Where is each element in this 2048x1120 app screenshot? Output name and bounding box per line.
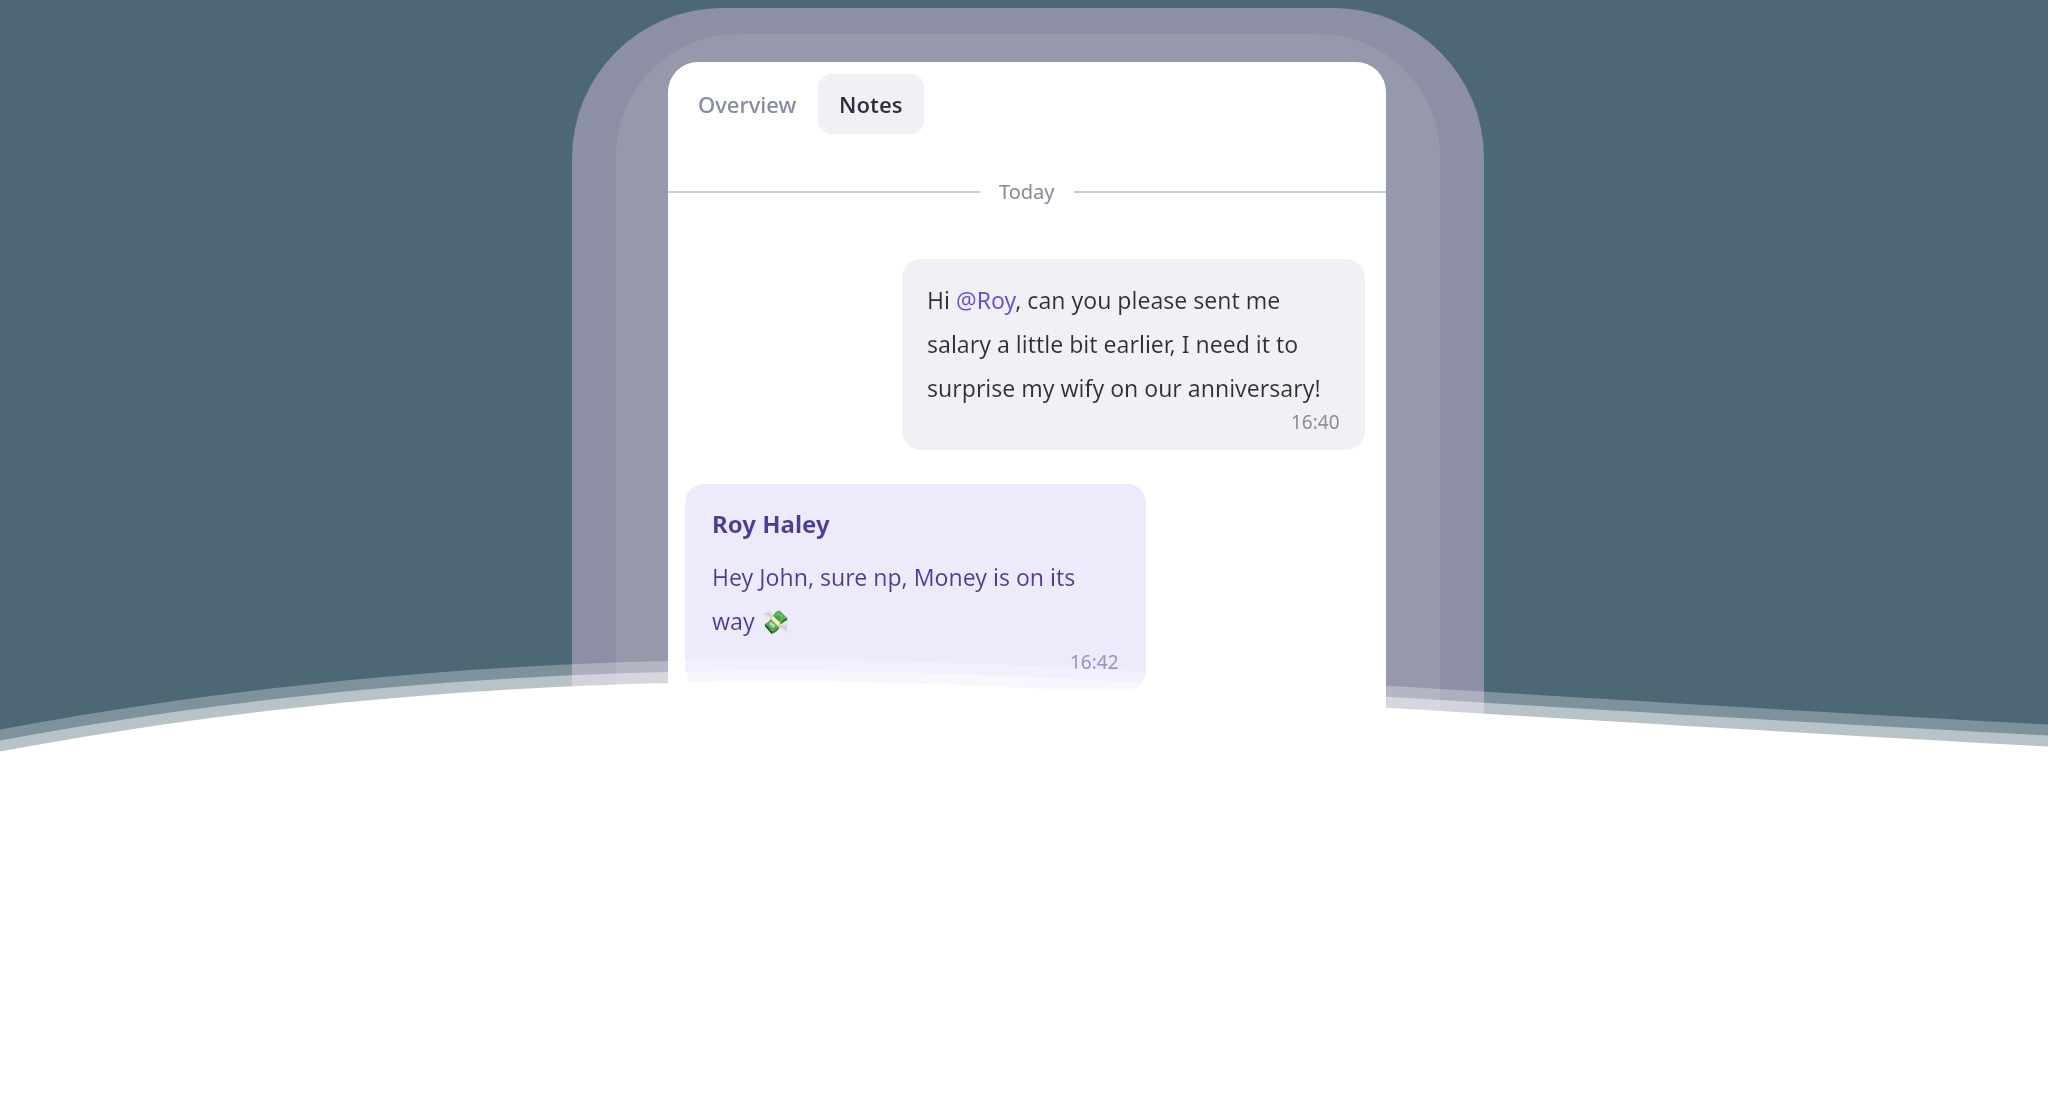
button[interactable]: Hi @Roy, can you please sent me salary a… — [902, 259, 1365, 450]
button[interactable]: Notes — [818, 74, 924, 134]
staticText: Hi @Roy, can you please sent me salary a… — [927, 284, 1340, 403]
staticText: Today — [999, 178, 1055, 205]
staticText: 16:40 — [1291, 409, 1340, 435]
button[interactable]: Roy Haley — [685, 484, 1146, 690]
staticText: Roy Haley — [712, 507, 830, 540]
button[interactable]: Overview — [682, 74, 813, 134]
staticText: Notes — [839, 89, 903, 119]
staticText: Overview — [698, 89, 797, 119]
staticText: Hey John, sure np, Money is on its way 💸 — [712, 561, 1119, 637]
staticText: 16:42 — [1070, 649, 1119, 675]
